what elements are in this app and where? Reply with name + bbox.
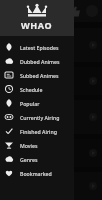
staticText: Subbed Animes <box>20 72 59 79</box>
button[interactable] <box>0 67 102 95</box>
staticText: Finished Airing <box>20 128 57 135</box>
staticText: Currently Airing <box>20 114 60 121</box>
button[interactable]: Currently Airing <box>0 110 74 124</box>
button[interactable]: Latest Episodes <box>0 40 74 54</box>
button[interactable]: Bookmarked <box>0 166 74 180</box>
button[interactable]: Dubbed Animes <box>0 54 74 68</box>
button[interactable] <box>0 172 102 200</box>
staticText: Latest Episodes <box>20 44 59 51</box>
button[interactable]: Subbed Animes <box>0 68 74 82</box>
staticText: Popular <box>20 100 40 107</box>
staticText: WHAO <box>21 19 53 31</box>
button[interactable] <box>0 28 102 62</box>
button[interactable]: Finished Airing <box>0 124 74 138</box>
staticText: Schedule <box>20 86 43 93</box>
staticText: Genres <box>20 156 38 163</box>
staticText: Dubbed Animes <box>20 58 60 65</box>
button[interactable] <box>0 139 102 167</box>
staticText: Movies <box>20 142 38 149</box>
button[interactable]: Schedule <box>0 82 74 96</box>
button[interactable]: Likes <box>69 6 80 17</box>
button[interactable] <box>0 100 102 134</box>
button[interactable]: Movies <box>0 138 74 152</box>
button[interactable]: Popular <box>0 96 74 110</box>
button[interactable]: Genres <box>0 152 74 166</box>
staticText: Bookmarked <box>20 170 52 177</box>
